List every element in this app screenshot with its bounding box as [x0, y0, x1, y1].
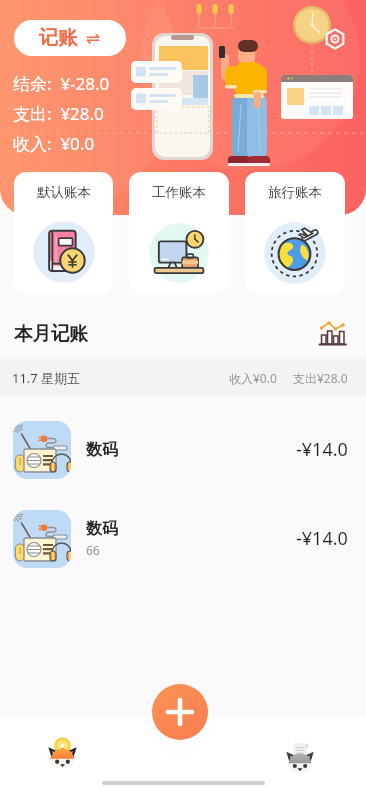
staticText: 支出: ¥28.0 — [13, 102, 104, 125]
button[interactable]: 默认账本 — [14, 172, 113, 293]
staticText: 收入: ¥0.0 — [13, 132, 95, 155]
button[interactable]: Add — [152, 684, 208, 740]
staticText: 默认账本 — [37, 184, 91, 201]
staticText: 记账 — [39, 26, 77, 50]
button[interactable]: 数码 — [0, 405, 366, 494]
staticText: 结余: ¥-28.0 — [13, 72, 110, 95]
button[interactable]: 工作账本 — [129, 172, 229, 293]
staticText: 工作账本 — [152, 184, 206, 201]
button[interactable]: 旅行账本 — [245, 172, 345, 293]
button[interactable]: 记账 — [14, 20, 126, 56]
staticText: 数码 — [86, 440, 118, 460]
staticText: 本月记账 — [14, 322, 88, 345]
staticText: 11.7 星期五 — [12, 369, 81, 387]
button[interactable]: Settings — [325, 29, 345, 49]
staticText: -¥14.0 — [296, 526, 348, 551]
staticText: 支出¥28.0 — [293, 370, 348, 386]
button[interactable]: Home — [45, 735, 80, 770]
button[interactable]: Statistics — [318, 318, 348, 348]
staticText: ⇌ — [86, 28, 101, 48]
staticText: 收入¥0.0 — [229, 370, 277, 386]
staticText: 旅行账本 — [268, 184, 322, 201]
button[interactable]: Notes — [283, 740, 317, 774]
button[interactable]: 数码 — [0, 494, 366, 583]
staticText: 66 — [86, 542, 100, 558]
staticText: -¥14.0 — [296, 437, 348, 462]
staticText: 数码 — [86, 519, 118, 539]
